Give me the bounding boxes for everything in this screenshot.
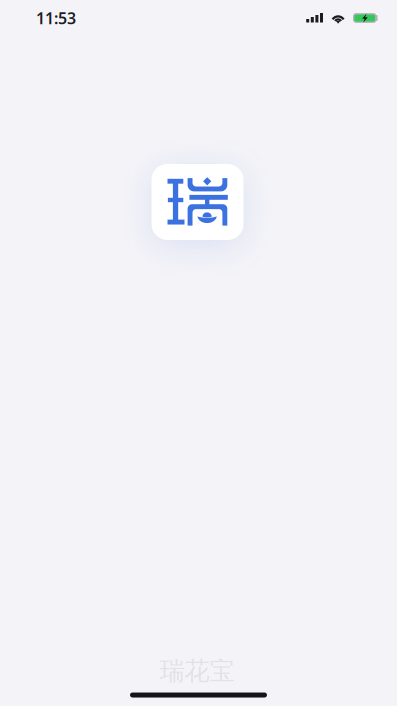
staticText: 11:53 (36, 7, 76, 29)
staticText: 瑞花宝 (159, 655, 234, 686)
